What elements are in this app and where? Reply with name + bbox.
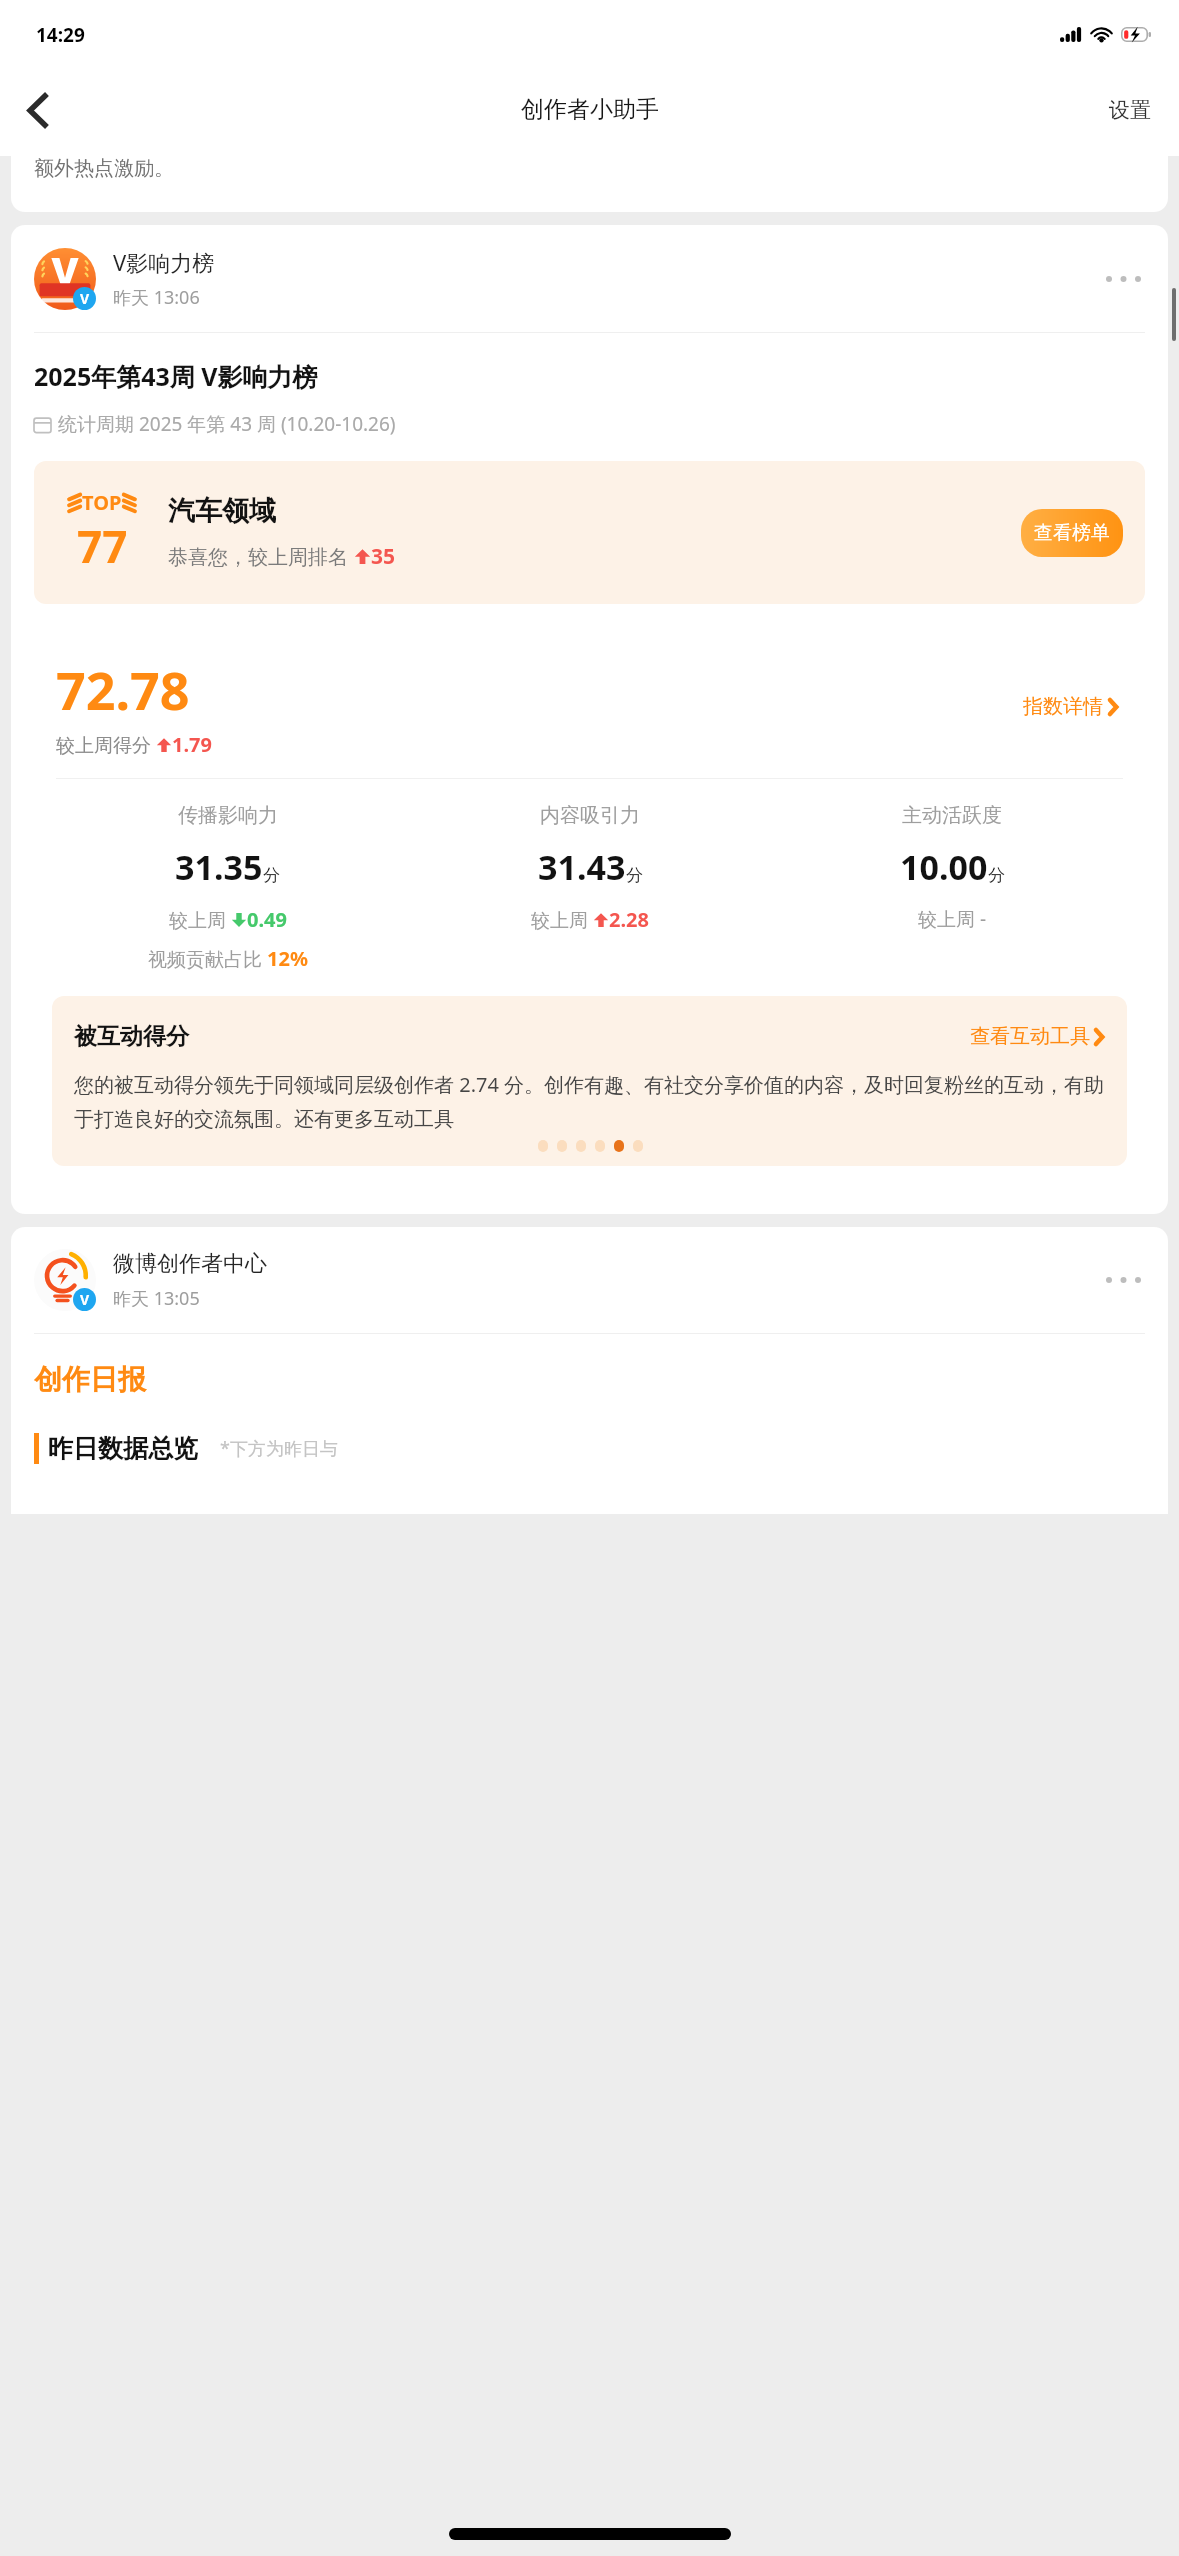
staticText: 分 [263, 865, 280, 886]
staticText: 2025年第43周 V影响力榜 [34, 359, 318, 393]
staticText: 72.78 [56, 654, 190, 725]
staticText: 分 [626, 865, 643, 886]
staticText: 统计周期 2025 年第 43 周 (10.20-10.26) [58, 411, 396, 437]
staticText: 额外热点激励。 [34, 156, 174, 181]
staticText: 您的被互动得分领先于同领域同层级创作者 2.74 分。创作有趣、有社交分享价值的… [74, 1071, 1107, 1132]
staticText: 较上周 [169, 907, 231, 933]
staticText: 31.43 [538, 844, 626, 890]
staticText: V影响力榜 [113, 247, 215, 277]
staticText: 0.49 [247, 906, 287, 933]
button[interactable]: V [11, 1227, 1168, 1514]
staticText: 2.28 [609, 906, 649, 933]
button[interactable]: More options [1098, 1255, 1148, 1305]
button[interactable]: 额外热点激励。 [11, 156, 1168, 212]
button[interactable]: 查看互动工具 [966, 1020, 1107, 1053]
staticText: 分 [988, 865, 1005, 886]
staticText: 较上周 [531, 907, 593, 933]
staticText: 视频贡献占比 [148, 946, 267, 972]
staticText: V [80, 1290, 90, 1309]
staticText: 内容吸引力 [540, 803, 640, 828]
button[interactable]: Back [8, 81, 66, 139]
staticText: 查看互动工具 [970, 1024, 1090, 1049]
staticText: 主动活跃度 [902, 803, 1002, 828]
staticText: 昨天 13:06 [113, 285, 200, 310]
staticText: 创作者小助手 [521, 95, 659, 124]
staticText: 被互动得分 [74, 1022, 189, 1051]
staticText: 1.79 [172, 731, 212, 758]
staticText: 微博创作者中心 [113, 1250, 267, 1278]
staticText: 传播影响力 [178, 803, 278, 828]
staticText: 35 [371, 542, 396, 571]
staticText: 创作日报 [34, 1362, 146, 1397]
staticText: 77 [77, 516, 128, 576]
button[interactable]: TOP [34, 461, 1145, 604]
staticText: 指数详情 [1023, 694, 1103, 719]
staticText: 昨天 13:05 [113, 1286, 200, 1311]
staticText: 10.00 [900, 844, 988, 890]
staticText: TOP [82, 489, 122, 516]
button[interactable]: 被互动得分 [52, 996, 1127, 1166]
staticText: 14:29 [36, 22, 85, 48]
staticText: 31.35 [175, 844, 263, 890]
button[interactable]: 设置 [1099, 89, 1161, 131]
button[interactable]: 查看榜单 [1021, 509, 1123, 557]
staticText: 恭喜您，较上周排名 [168, 543, 354, 570]
staticText: 汽车领域 [168, 494, 276, 528]
staticText: 较上周 - [918, 906, 987, 932]
button[interactable]: V [11, 225, 1168, 1214]
staticText: *下方为昨日与 [220, 1436, 338, 1461]
staticText: V [80, 289, 90, 308]
button[interactable]: More options [1098, 254, 1148, 304]
staticText: 较上周得分 [56, 732, 156, 758]
staticText: 12% [267, 945, 308, 972]
button[interactable]: 指数详情 [1017, 688, 1123, 725]
staticText: 设置 [1109, 97, 1151, 123]
staticText: 昨日数据总览 [48, 1433, 198, 1464]
staticText: 查看榜单 [1034, 521, 1110, 545]
